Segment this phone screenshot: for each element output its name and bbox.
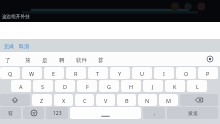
staticText: I bbox=[163, 70, 165, 77]
staticText: O bbox=[184, 70, 189, 77]
button[interactable]: L bbox=[187, 80, 207, 92]
button[interactable]: R bbox=[66, 67, 86, 79]
button[interactable]: 是 bbox=[36, 54, 54, 66]
button[interactable]: Shift bbox=[0, 94, 30, 106]
staticText: W bbox=[29, 70, 35, 77]
staticText: E bbox=[52, 70, 56, 77]
button[interactable]: H bbox=[121, 80, 141, 92]
button[interactable]: E bbox=[44, 67, 64, 79]
staticText: 发送 bbox=[188, 110, 198, 116]
staticText: ， bbox=[152, 110, 157, 116]
button[interactable]: Emoji bbox=[23, 107, 44, 119]
button[interactable]: S bbox=[33, 80, 53, 92]
staticText: A bbox=[19, 83, 23, 90]
staticText: 了 bbox=[5, 57, 11, 64]
staticText: B bbox=[125, 97, 129, 104]
button[interactable]: 软件 bbox=[72, 54, 90, 66]
button[interactable]: M bbox=[159, 94, 178, 106]
staticText: 啊 bbox=[59, 57, 65, 64]
staticText: L bbox=[196, 83, 199, 90]
staticText: U bbox=[140, 70, 145, 77]
button[interactable]: C bbox=[75, 94, 94, 106]
staticText: C bbox=[83, 97, 87, 104]
button[interactable]: Z bbox=[32, 94, 52, 106]
button[interactable]: J bbox=[143, 80, 163, 92]
button[interactable]: V bbox=[96, 94, 115, 106]
button[interactable]: I bbox=[154, 67, 174, 79]
staticText: 完成 bbox=[4, 43, 14, 49]
staticText: Z bbox=[40, 97, 44, 104]
button[interactable]: Q bbox=[0, 67, 20, 79]
button[interactable]: G bbox=[99, 80, 119, 92]
staticText: K bbox=[173, 83, 177, 90]
staticText: G bbox=[107, 83, 112, 90]
staticText: 第 bbox=[25, 57, 31, 64]
button[interactable]: 啊 bbox=[53, 54, 71, 66]
staticText: Y bbox=[118, 70, 122, 77]
button[interactable]: W bbox=[22, 67, 42, 79]
button[interactable]: Send bbox=[167, 107, 218, 119]
staticText: 群 bbox=[98, 57, 104, 64]
button[interactable]: Backspace bbox=[180, 94, 218, 106]
staticText: R bbox=[74, 70, 78, 77]
button[interactable]: X bbox=[54, 94, 73, 106]
staticText: 是 bbox=[42, 57, 48, 64]
staticText: 这边组开外挂 bbox=[2, 14, 30, 20]
staticText: J bbox=[152, 83, 154, 90]
staticText: V bbox=[104, 97, 108, 104]
button[interactable]: 完成 bbox=[3, 43, 15, 49]
button[interactable]: More candidates bbox=[205, 54, 215, 64]
button[interactable]: K bbox=[165, 80, 185, 92]
button[interactable]: 群 bbox=[92, 54, 110, 66]
button[interactable]: Numbers bbox=[46, 107, 68, 119]
staticText: T bbox=[96, 70, 100, 77]
button[interactable]: A bbox=[11, 80, 31, 92]
button[interactable]: O bbox=[176, 67, 196, 79]
staticText: 取消 bbox=[19, 43, 29, 49]
button[interactable]: Y bbox=[110, 67, 130, 79]
button[interactable]: Space bbox=[70, 107, 141, 119]
button[interactable]: F bbox=[77, 80, 97, 92]
staticText: F bbox=[86, 83, 89, 90]
staticText: 123 bbox=[53, 110, 62, 117]
button[interactable]: N bbox=[138, 94, 157, 106]
button[interactable]: 第 bbox=[19, 54, 37, 66]
staticText: D bbox=[63, 83, 68, 90]
staticText: N bbox=[145, 97, 150, 104]
button[interactable]: B bbox=[117, 94, 136, 106]
button[interactable]: T bbox=[88, 67, 108, 79]
button[interactable]: Symbols bbox=[0, 107, 21, 119]
button[interactable]: 了 bbox=[0, 54, 17, 66]
button[interactable]: 取消 bbox=[18, 43, 30, 49]
staticText: M bbox=[166, 97, 171, 104]
staticText: 符 bbox=[8, 110, 13, 116]
button[interactable]: Comma bbox=[143, 107, 165, 119]
staticText: X bbox=[62, 97, 66, 104]
button[interactable]: P bbox=[198, 67, 218, 79]
button[interactable]: U bbox=[132, 67, 152, 79]
staticText: 软件 bbox=[76, 57, 87, 64]
staticText: P bbox=[206, 70, 210, 77]
staticText: Q bbox=[8, 70, 13, 77]
staticText: S bbox=[41, 83, 45, 90]
button[interactable]: D bbox=[55, 80, 75, 92]
staticText: H bbox=[129, 83, 134, 90]
